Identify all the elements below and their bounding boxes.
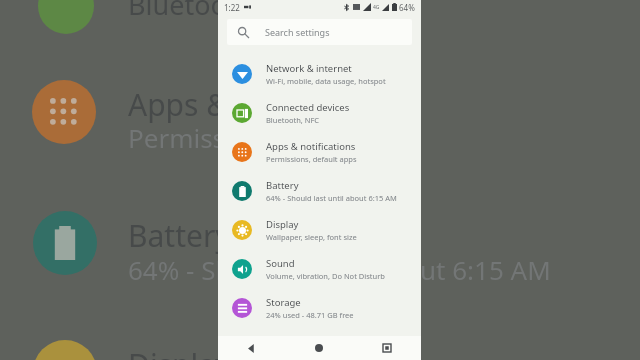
- staticText: Volume, vibration, Do Not Disturb: [266, 271, 385, 281]
- button[interactable]: Search settings: [227, 19, 412, 45]
- staticText: Bluetoot: [128, 0, 237, 23]
- staticText: 64% - Should last until about 6:15 AM: [266, 193, 397, 203]
- button[interactable]: Sound: [218, 249, 421, 288]
- staticText: Sound: [266, 257, 295, 270]
- staticText: Bluetooth, NFC: [266, 115, 320, 125]
- button[interactable]: Apps & notifications: [218, 132, 421, 171]
- staticText: 1:22: [224, 2, 240, 13]
- button[interactable]: Storage: [218, 288, 421, 327]
- staticText: Wi-Fi, mobile, data usage, hotspot: [266, 76, 386, 86]
- staticText: Permiss: [128, 120, 226, 155]
- button[interactable]: Battery: [218, 171, 421, 210]
- staticText: 4G: [373, 4, 380, 11]
- button[interactable]: Connected devices: [218, 93, 421, 132]
- staticText: Search settings: [265, 26, 330, 38]
- staticText: Network & internet: [266, 62, 352, 75]
- button[interactable]: Recents: [353, 336, 421, 360]
- staticText: Storage: [266, 296, 301, 309]
- staticText: 64% - Sh: [128, 252, 232, 287]
- button[interactable]: Network & internet: [218, 54, 421, 93]
- staticText: Display: [128, 344, 231, 360]
- staticText: Apps &: [128, 84, 229, 125]
- staticText: 24% used - 48.71 GB free: [266, 310, 354, 320]
- button[interactable]: Back: [218, 336, 285, 360]
- button[interactable]: Display: [218, 210, 421, 249]
- staticText: Permissions, default apps: [266, 154, 357, 164]
- staticText: ut 6:15 AM: [420, 252, 551, 287]
- staticText: Apps & notifications: [266, 140, 356, 153]
- staticText: 64%: [399, 2, 415, 13]
- staticText: Connected devices: [266, 101, 350, 114]
- staticText: Battery: [128, 215, 231, 256]
- staticText: Battery: [266, 179, 299, 192]
- staticText: Wallpaper, sleep, font size: [266, 232, 357, 242]
- staticText: Display: [266, 218, 299, 231]
- button[interactable]: Home: [285, 336, 353, 360]
